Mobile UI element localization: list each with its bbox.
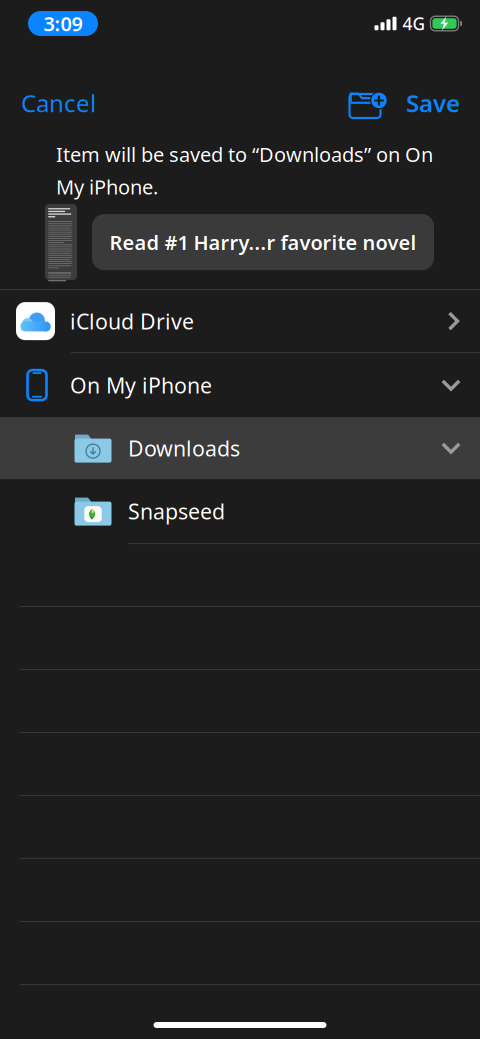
staticText: 3:09 [43,10,82,37]
button[interactable]: On My iPhone [0,353,480,417]
staticText: On My iPhone [70,371,212,399]
staticText: Read #1 Harry...r favorite novel [109,229,416,255]
staticText: Downloads [128,434,240,462]
staticText: 4G [402,12,425,35]
staticText: Cancel [21,87,96,119]
staticText: Snapseed [128,497,225,525]
button[interactable]: iCloud Drive [0,290,480,352]
staticText: Save [406,87,460,119]
staticText: iCloud Drive [70,307,194,335]
button[interactable]: Save [392,79,480,127]
staticText: My iPhone. [56,174,158,200]
button[interactable]: Downloads [0,417,480,479]
button[interactable]: New Folder [334,79,392,127]
staticText: Item will be saved to “Downloads” on On [56,141,433,168]
button[interactable]: Cancel [0,79,110,127]
button[interactable]: Snapseed [0,479,480,543]
